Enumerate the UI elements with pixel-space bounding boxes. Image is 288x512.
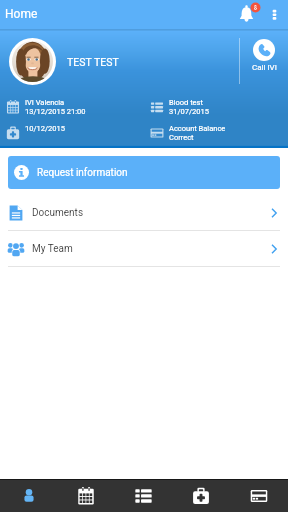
staticText: Request information	[37, 167, 128, 179]
button[interactable]: Profile	[0, 479, 57, 512]
staticText: Account Balance	[169, 124, 226, 133]
button[interactable]: Payments	[230, 479, 288, 512]
button[interactable]: Medical	[172, 479, 230, 512]
button[interactable]: Documents	[0, 195, 288, 231]
button[interactable]: Notifications	[234, 0, 260, 29]
staticText: Home	[5, 7, 38, 21]
staticText: Documents	[32, 207, 84, 219]
button[interactable]: Request information	[8, 156, 280, 189]
staticText: 31/07/2015	[169, 107, 209, 116]
staticText: 10/12/2015	[25, 124, 65, 133]
staticText: IVI Valencia	[25, 98, 65, 107]
staticText: Call IVI	[252, 63, 277, 72]
button[interactable]: List	[114, 479, 172, 512]
button[interactable]: More options	[264, 0, 284, 29]
button[interactable]: Calendar	[57, 479, 114, 512]
staticText: My Team	[32, 243, 73, 255]
staticText: Blood test	[169, 98, 203, 107]
staticText: TEST TEST	[67, 56, 119, 68]
staticText: 13/12/2015 21:00	[25, 107, 86, 116]
staticText: Correct	[169, 133, 194, 142]
button[interactable]: My Team	[0, 231, 288, 267]
button[interactable]: Call IVI	[246, 39, 282, 72]
